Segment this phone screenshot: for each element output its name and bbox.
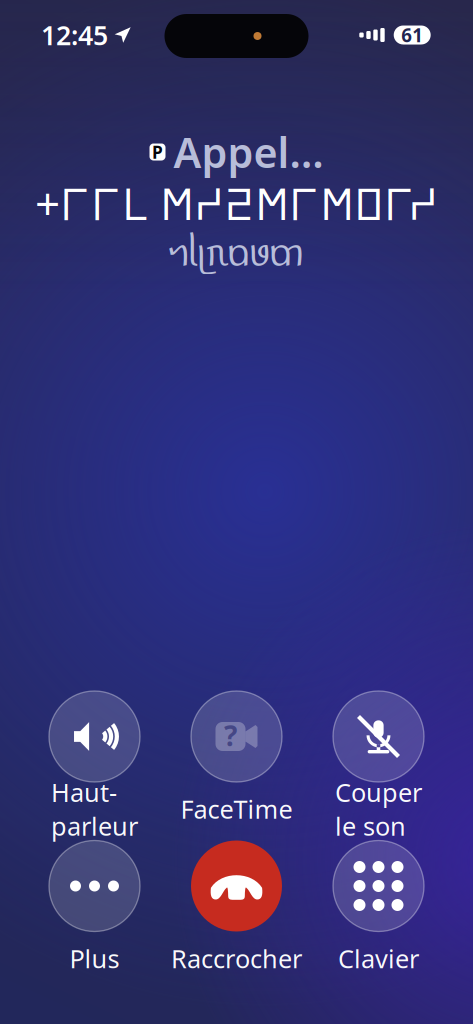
button[interactable]: Plus	[23, 840, 165, 987]
button[interactable]: Raccrocher	[165, 840, 307, 987]
staticText: 61	[401, 23, 423, 47]
staticText: ?	[224, 717, 237, 754]
staticText: Plus	[69, 942, 119, 975]
button[interactable]: ?	[165, 691, 307, 838]
button[interactable]: Clavier	[307, 840, 449, 987]
staticText: +𞓶𞓶𞓲 𞓴𞓷𞓵𞓴𞓶𞓴𞓰𞓶𞓷	[35, 173, 438, 233]
staticText: Clavier	[338, 942, 419, 975]
staticText: P	[152, 140, 163, 163]
staticText: Couper le son	[335, 775, 422, 843]
staticText: Raccrocher	[171, 942, 302, 975]
staticText: FaceTime	[180, 792, 292, 826]
button[interactable]: Haut- parleur	[23, 691, 165, 838]
button[interactable]: Couper le son	[307, 691, 449, 838]
staticText: ᥐᥣᥨᥰᥝᥳᥖ	[169, 226, 303, 276]
staticText: Appel…	[173, 125, 323, 179]
staticText: 12:45	[41, 17, 108, 53]
staticText: Haut- parleur	[51, 775, 138, 843]
